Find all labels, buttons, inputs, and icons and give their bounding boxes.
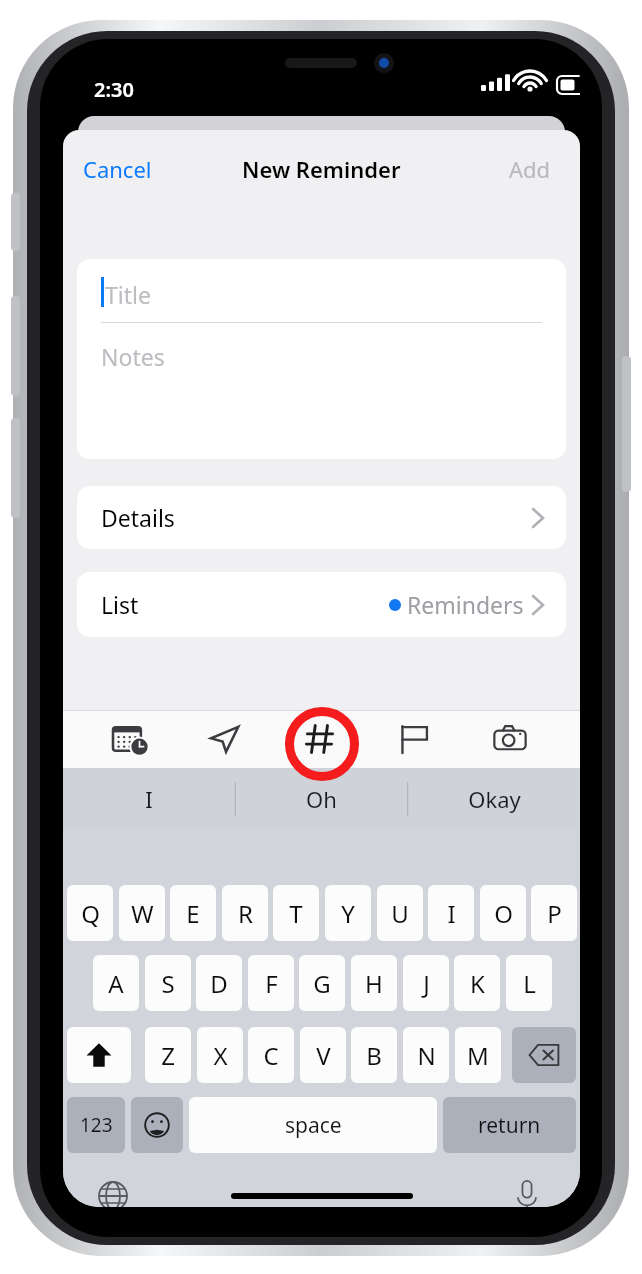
button[interactable]: Date and time (100, 710, 160, 768)
staticText: space (285, 1111, 342, 1140)
staticText: M (467, 1039, 489, 1072)
button[interactable]: Q (67, 885, 113, 941)
button[interactable]: I (428, 885, 474, 941)
staticText: Y (341, 897, 355, 930)
button[interactable]: Dictation (501, 1170, 553, 1207)
button[interactable]: Photo (480, 710, 540, 768)
button[interactable]: M (455, 1027, 501, 1083)
button[interactable]: Tags (290, 710, 350, 768)
staticText: E (186, 897, 200, 930)
staticText: K (470, 967, 485, 1000)
staticText: List (101, 589, 139, 620)
staticText: T (289, 897, 303, 930)
button[interactable]: Okay (408, 768, 580, 830)
button[interactable]: I (63, 768, 235, 830)
button[interactable]: Emoji (131, 1097, 183, 1153)
button[interactable]: X (197, 1027, 243, 1083)
button[interactable]: Title (77, 259, 566, 459)
button[interactable]: Backspace (512, 1027, 576, 1083)
staticText: V (316, 1039, 331, 1072)
button[interactable]: Flag (384, 710, 444, 768)
staticText: H (365, 967, 383, 1000)
staticText: Reminders (407, 589, 524, 620)
staticText: Okay (468, 784, 521, 814)
button[interactable]: C (248, 1027, 294, 1083)
staticText: Title (105, 279, 151, 310)
staticText: 2:30 (94, 76, 134, 103)
button[interactable]: T (273, 885, 319, 941)
button[interactable]: N (403, 1027, 449, 1083)
button[interactable]: Add (503, 148, 557, 190)
button[interactable]: E (170, 885, 216, 941)
button[interactable]: Oh (235, 768, 407, 830)
staticText: F (265, 967, 278, 1000)
staticText: Add (509, 154, 551, 184)
staticText: P (547, 897, 562, 930)
staticText: X (213, 1039, 228, 1072)
button[interactable]: D (196, 955, 242, 1011)
button[interactable]: R (222, 885, 268, 941)
button[interactable]: space (189, 1097, 437, 1153)
staticText: W (131, 897, 154, 930)
button[interactable]: Y (325, 885, 371, 941)
button[interactable]: H (351, 955, 397, 1011)
staticText: return (478, 1111, 541, 1140)
button[interactable]: Details (77, 486, 566, 549)
staticText: I (145, 784, 153, 814)
staticText: B (366, 1039, 382, 1072)
button[interactable]: 123 (67, 1097, 125, 1153)
staticText: S (161, 967, 175, 1000)
button[interactable]: W (119, 885, 165, 941)
button[interactable]: B (351, 1027, 397, 1083)
button[interactable]: return (443, 1097, 576, 1153)
staticText: Z (161, 1039, 175, 1072)
staticText: Q (81, 897, 100, 930)
staticText: Notes (101, 341, 165, 372)
button[interactable]: S (145, 955, 191, 1011)
staticText: A (108, 967, 124, 1000)
button[interactable]: J (403, 955, 449, 1011)
staticText: Details (101, 502, 175, 533)
button[interactable]: P (531, 885, 577, 941)
staticText: 123 (80, 1112, 113, 1138)
staticText: J (423, 967, 430, 1000)
button[interactable]: Shift (67, 1027, 131, 1083)
button[interactable]: Cancel (77, 148, 158, 190)
button[interactable]: Z (145, 1027, 191, 1083)
button[interactable]: List (77, 572, 566, 637)
button[interactable]: A (93, 955, 139, 1011)
button[interactable]: O (480, 885, 526, 941)
button[interactable]: K (454, 955, 500, 1011)
staticText: I (447, 897, 456, 930)
staticText: C (263, 1039, 279, 1072)
staticText: O (494, 897, 513, 930)
staticText: Oh (306, 784, 337, 814)
staticText: L (523, 967, 536, 1000)
staticText: Cancel (83, 154, 152, 184)
staticText: D (210, 967, 228, 1000)
staticText: G (313, 967, 331, 1000)
button[interactable]: F (248, 955, 294, 1011)
button[interactable]: L (506, 955, 552, 1011)
staticText: New Reminder (242, 154, 401, 184)
button[interactable]: V (300, 1027, 346, 1083)
staticText: U (391, 897, 409, 930)
staticText: R (238, 897, 253, 930)
button[interactable]: Change keyboard (87, 1170, 139, 1207)
button[interactable]: G (299, 955, 345, 1011)
button[interactable]: U (377, 885, 423, 941)
staticText: N (417, 1039, 436, 1072)
button[interactable]: Location (194, 710, 254, 768)
